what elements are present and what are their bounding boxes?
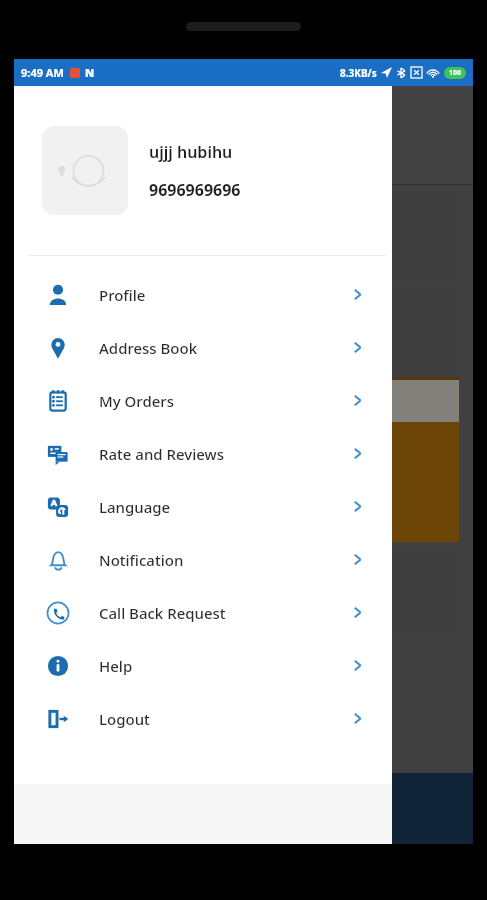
staticText: Profile [99,285,146,305]
button[interactable]: Profile [14,268,392,321]
staticText: 100 [449,68,462,78]
staticText: 9:49 AM [21,65,64,80]
staticText: Logout [99,709,150,729]
button[interactable]: Rate and Reviews [14,427,392,480]
staticText: Language [99,497,171,517]
staticText: Call Back Request [99,603,226,623]
button[interactable]: Call Back Request [14,586,392,639]
button[interactable]: My Orders [14,374,392,427]
staticText: 8.3KB/s [340,66,377,80]
staticText: Address Book [99,338,198,358]
staticText: Help [99,656,133,676]
button[interactable]: Help [14,639,392,692]
button[interactable]: Address Book [14,321,392,374]
button[interactable]: Logout [14,692,392,745]
staticText: N [85,65,95,80]
staticText: Notification [99,550,184,570]
button[interactable]: Notification [14,533,392,586]
button[interactable]: Language [14,480,392,533]
staticText: My Orders [99,391,174,411]
staticText: 9696969696 [149,179,241,201]
staticText: Rate and Reviews [99,444,224,464]
staticText: ujjj hubihu [149,141,233,163]
